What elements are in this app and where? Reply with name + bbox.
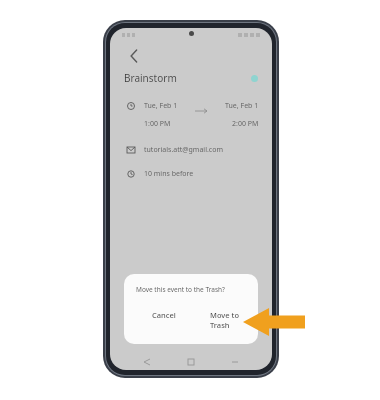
staticText: Move to Trash: [210, 310, 240, 330]
button[interactable]: Recents: [228, 355, 242, 369]
button[interactable]: Move to Trash: [204, 307, 246, 333]
staticText: Cancel: [152, 310, 176, 320]
button[interactable]: Home: [184, 355, 198, 369]
other: Pointer arrow: [243, 308, 305, 336]
staticText: Move this event to the Trash?: [136, 285, 225, 294]
staticText: Tue, Feb 1: [144, 101, 178, 111]
staticText: Brainstorm: [124, 71, 177, 85]
staticText: Tue, Feb 1: [225, 101, 259, 111]
staticText: 1:00 PM: [144, 119, 171, 129]
staticText: 2:00 PM: [232, 119, 259, 129]
staticText: tutorials.att@gmail.com: [144, 145, 223, 155]
button[interactable]: 10 mins before: [123, 169, 259, 179]
staticText: 10 mins before: [144, 169, 194, 179]
button[interactable]: tutorials.att@gmail.com: [123, 145, 259, 155]
button[interactable]: Back: [122, 44, 146, 68]
button[interactable]: Cancel: [146, 307, 182, 323]
button[interactable]: Back: [140, 355, 154, 369]
